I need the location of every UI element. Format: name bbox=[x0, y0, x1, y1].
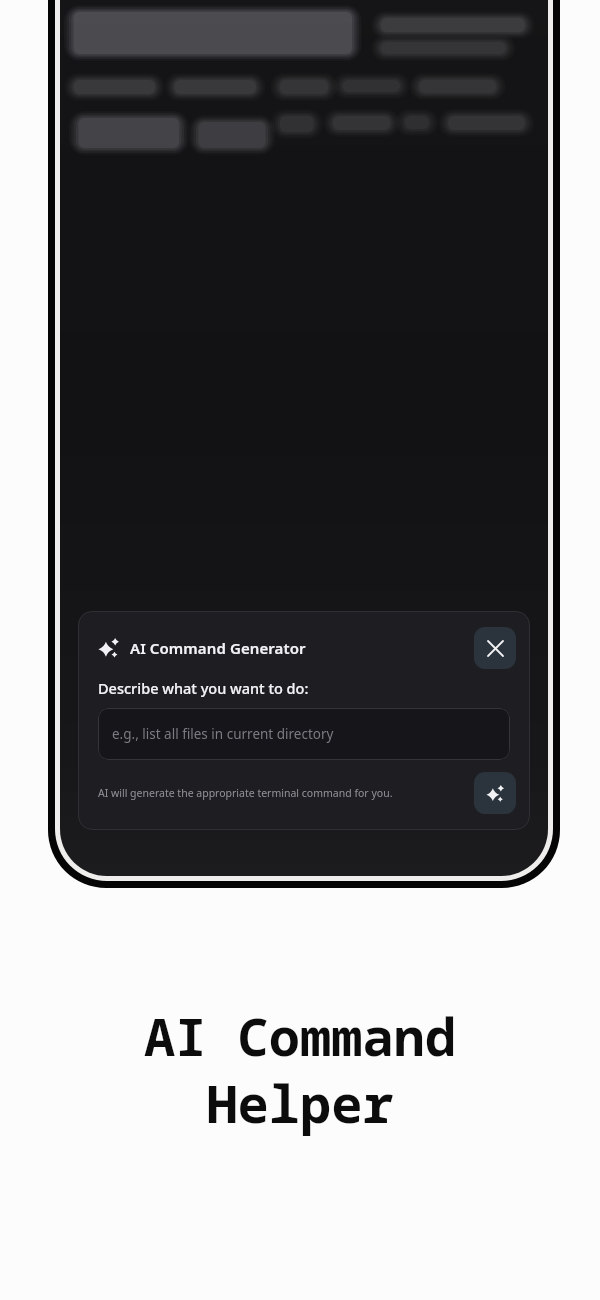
button[interactable]: Close bbox=[474, 627, 516, 669]
staticText: AI Command Generator bbox=[130, 638, 306, 658]
staticText: AI Command Helper bbox=[100, 1000, 500, 1139]
staticText: AI will generate the appropriate termina… bbox=[98, 786, 460, 800]
button[interactable]: e.g., list all files in current director… bbox=[98, 708, 510, 760]
staticText: e.g., list all files in current director… bbox=[112, 725, 334, 743]
button[interactable]: Generate command bbox=[474, 772, 516, 814]
staticText: Describe what you want to do: bbox=[98, 678, 309, 698]
